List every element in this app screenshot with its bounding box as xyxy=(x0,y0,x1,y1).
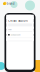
staticText: brand xyxy=(7,2,15,5)
staticText: Email xyxy=(8,29,11,31)
staticText: Use passkey xyxy=(11,34,21,36)
staticText: Create account xyxy=(8,19,28,22)
